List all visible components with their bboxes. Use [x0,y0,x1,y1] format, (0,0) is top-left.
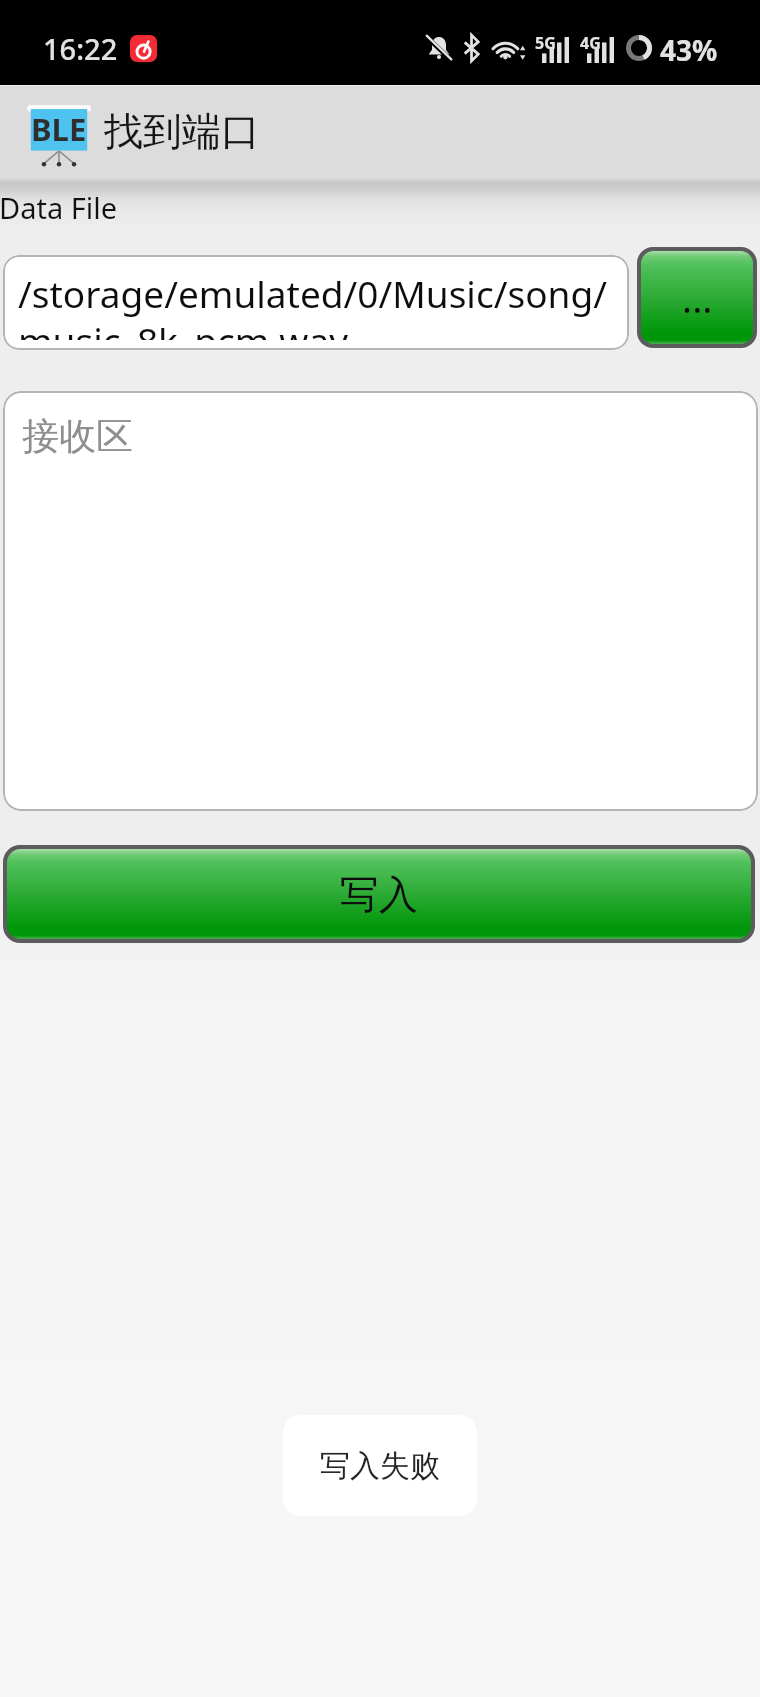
button[interactable]: ... [641,251,753,344]
button[interactable]: /storage/emulated/0/Music/song/music_8k_… [3,255,629,350]
staticText: 接收区 [22,413,133,460]
staticText: 写入 [340,870,418,919]
staticText: ... [682,272,713,324]
staticText: BLE [31,108,87,150]
staticText: 4G [580,32,601,54]
staticText: Data File [0,188,118,227]
staticText: 16:22 [43,29,118,68]
staticText: 43% [660,31,718,65]
button[interactable]: 接收区 [3,391,758,811]
button[interactable]: 写入 [7,849,751,939]
staticText: 写入失败 [320,1447,440,1485]
staticText: 5G [535,32,556,54]
staticText: /storage/emulated/0/Music/song/music_8k_… [18,268,629,340]
staticText: 找到端口 [104,107,260,156]
